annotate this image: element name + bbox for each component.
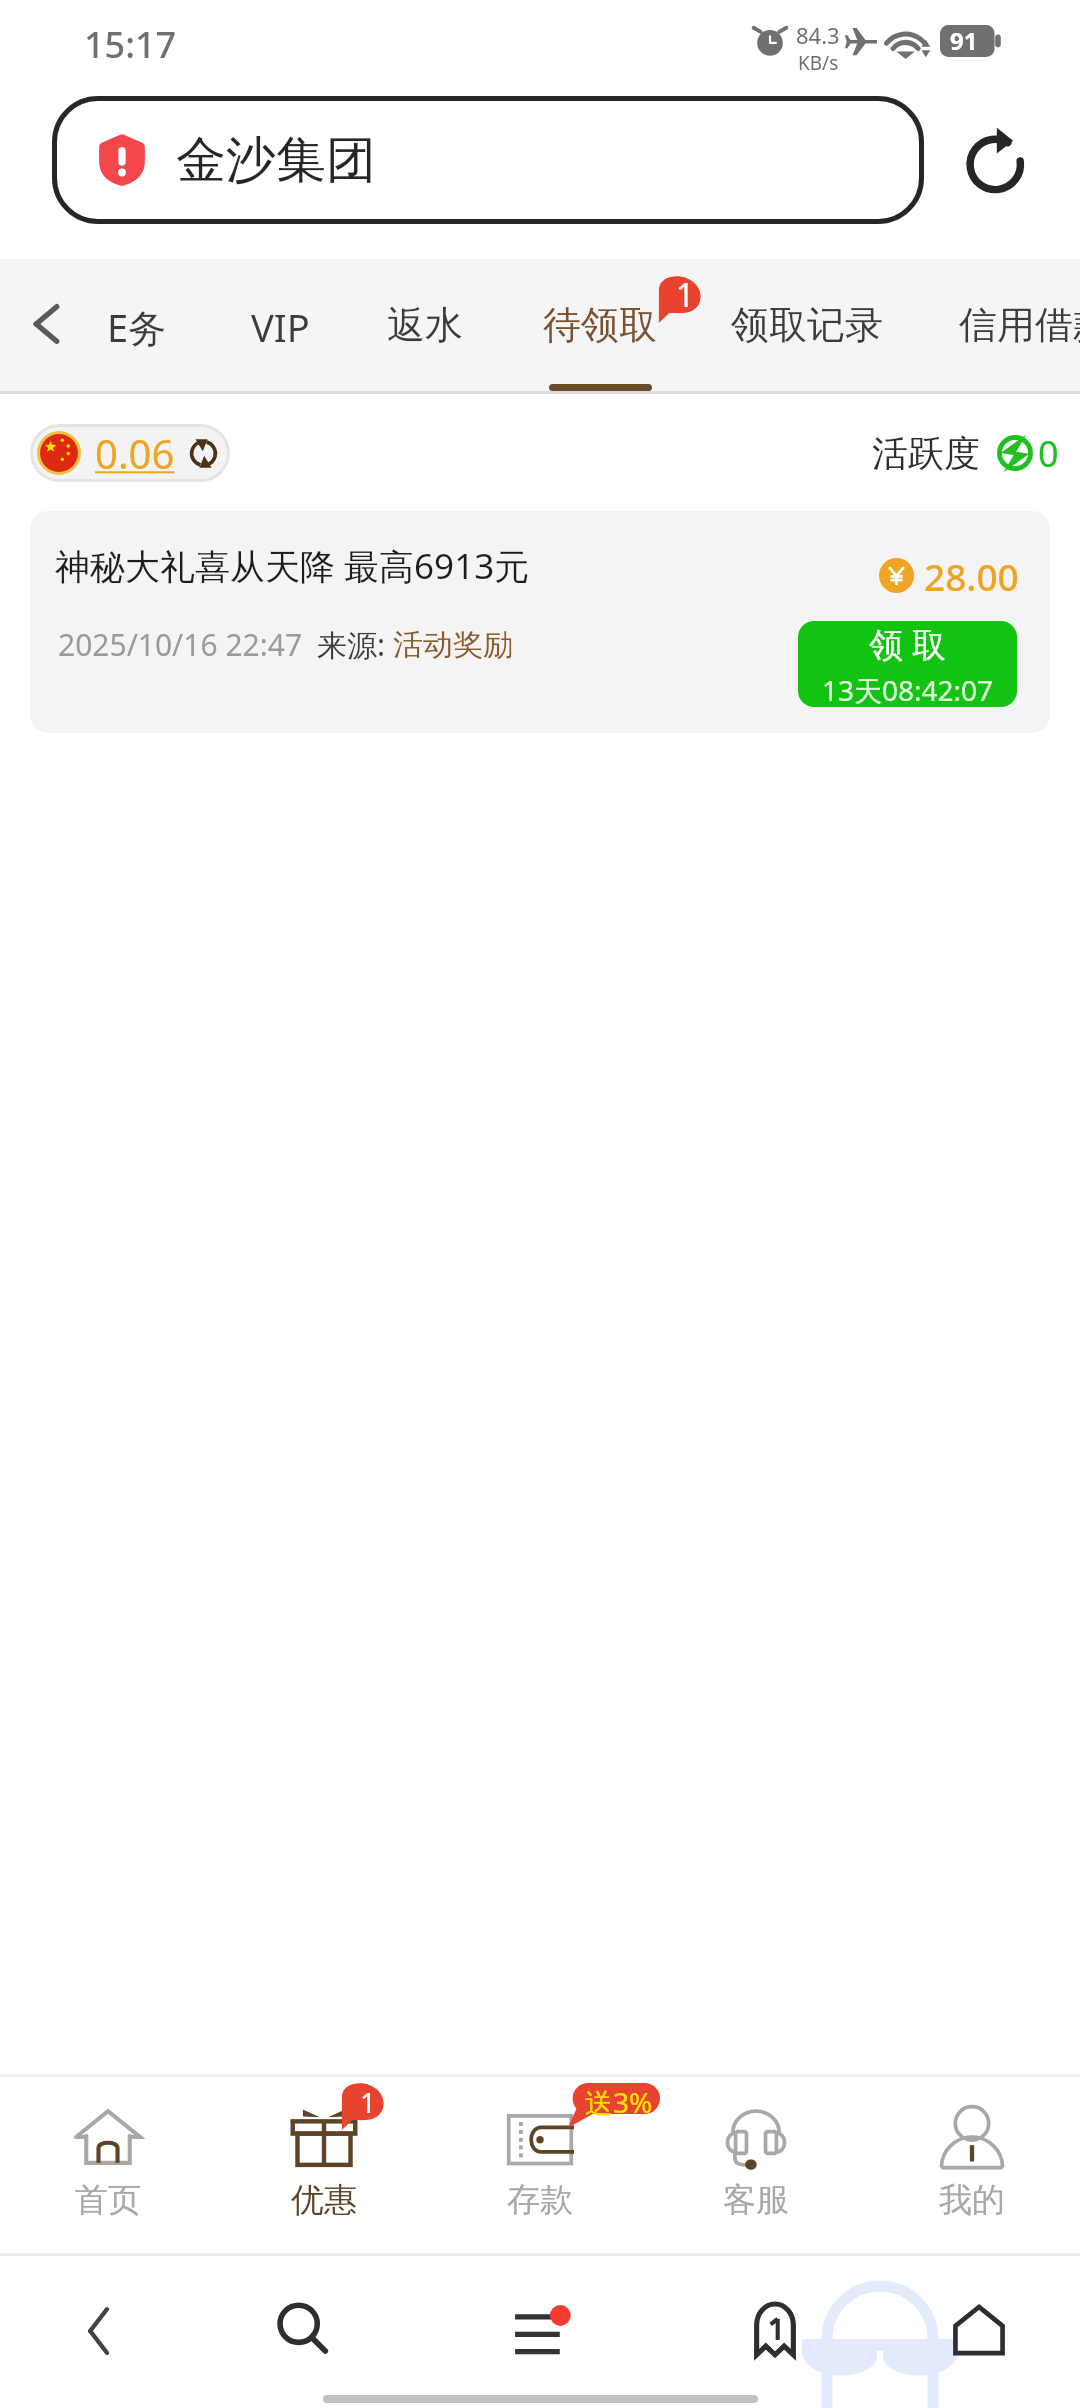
button[interactable]: Reload [959,120,1037,198]
staticText: 待领取 [543,301,657,349]
staticText: 神秘大礼喜从天降 最高6913元 [55,542,530,590]
button[interactable]: Tabs [727,2282,823,2378]
staticText: 0 [1038,429,1059,478]
button[interactable]: Search [255,2282,351,2378]
button[interactable]: 金沙集团 [52,96,924,224]
button[interactable]: Menu [491,2282,587,2378]
staticText: KB/s [798,50,839,76]
staticText: 信用借款 [959,301,1080,349]
staticText: 13天08:42:07 [822,671,994,707]
staticText: 2025/10/16 22:47 [58,624,303,665]
staticText: 0.06 [95,426,175,480]
staticText: 送3% [585,2083,653,2121]
staticText: 领 取 [869,621,946,667]
staticText: 84.3 [796,20,840,50]
staticText: 返水 [387,301,463,349]
staticText: 客服 [723,2179,789,2221]
staticText: 1 [676,273,695,317]
staticText: 优惠 [291,2179,357,2221]
button[interactable]: 返水 [369,259,481,391]
button[interactable]: 待领取 [526,259,674,391]
staticText: 金沙集团 [176,129,376,192]
staticText: 活跃度 [872,431,980,476]
staticText: 15:17 [84,20,177,69]
button[interactable]: 领取记录 [715,259,899,391]
button[interactable]: 存款 [432,2077,648,2253]
staticText: E务 [107,301,167,353]
button[interactable]: E务 [81,259,193,391]
button[interactable]: 神秘大礼喜从天降 最高6913元 [30,511,1050,733]
staticText: 领取记录 [731,301,883,349]
staticText: 我的 [939,2179,1005,2221]
button[interactable]: 我的 [864,2077,1080,2253]
button[interactable]: Back [5,282,89,366]
button[interactable]: 0.06 [30,424,230,482]
staticText: 91 [950,24,978,56]
staticText: 存款 [507,2179,573,2221]
staticText: 活动奖励 [393,626,513,664]
staticText: 28.00 [924,551,1019,601]
button[interactable]: 客服 [648,2077,864,2253]
button[interactable]: 领 取 [798,621,1017,707]
button[interactable]: 优惠 [216,2077,432,2253]
staticText: 来源: [317,624,393,665]
button[interactable]: 信用借款 [943,259,1080,391]
staticText: VIP [251,301,310,353]
button[interactable]: 首页 [0,2077,216,2253]
button[interactable]: VIP [206,259,354,391]
staticText: 1 [360,2083,377,2121]
button[interactable]: Home [931,2282,1027,2378]
staticText: 首页 [75,2179,141,2221]
button[interactable]: 活跃度 [872,424,1059,482]
button[interactable]: Back [51,2283,147,2379]
